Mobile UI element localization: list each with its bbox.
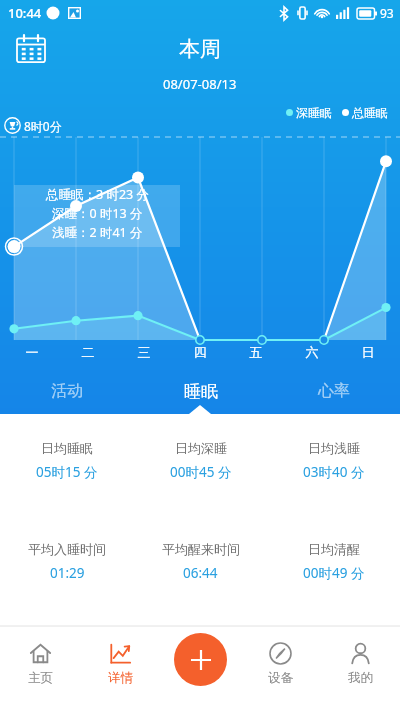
staticText: 设备 [268, 670, 293, 686]
staticText: 五 [228, 344, 284, 360]
staticText: 00时49 分 [303, 564, 365, 582]
staticText: 10:44 [8, 4, 42, 22]
button[interactable]: 日均清醒 [267, 541, 400, 582]
button[interactable]: 平均入睡时间 [0, 541, 134, 582]
staticText: 活动 [51, 381, 83, 401]
staticText: 深睡：0 时13 分 [52, 205, 143, 222]
button[interactable]: 我的 [320, 640, 400, 688]
staticText: 日均清醒 [308, 541, 360, 557]
staticText: 平均入睡时间 [28, 541, 106, 557]
button[interactable]: 日均浅睡 [267, 440, 400, 481]
staticText: 浅睡：2 时41 分 [52, 224, 143, 241]
staticText: 06:44 [183, 564, 218, 582]
button[interactable]: 日均睡眠 [0, 440, 134, 481]
staticText: 日均深睡 [175, 440, 227, 456]
staticText: 日均睡眠 [41, 440, 93, 456]
button[interactable]: 详情 [80, 640, 160, 688]
staticText: 日均浅睡 [308, 440, 360, 456]
staticText: 二 [60, 344, 116, 360]
button[interactable]: 活动 [0, 368, 134, 414]
staticText: 总睡眠 [352, 105, 388, 120]
staticText: 心率 [318, 381, 350, 401]
staticText: 三 [116, 344, 172, 360]
button[interactable]: 日均深睡 [134, 440, 267, 481]
staticText: 平均醒来时间 [162, 541, 240, 557]
button[interactable]: 主页 [0, 640, 80, 688]
staticText: 93 [380, 5, 394, 21]
button[interactable]: 心率 [267, 368, 400, 414]
staticText: 8时0分 [24, 118, 62, 134]
button[interactable]: 睡眠 [134, 368, 267, 414]
staticText: 详情 [108, 670, 133, 686]
staticText: 08/07-08/13 [163, 75, 237, 93]
staticText: 本周 [179, 36, 221, 62]
button[interactable]: Calendar [14, 32, 48, 66]
button[interactable]: 平均醒来时间 [134, 541, 267, 582]
button[interactable]: 设备 [240, 640, 320, 688]
staticText: 03时40 分 [303, 463, 365, 481]
staticText: 00时45 分 [170, 463, 232, 481]
button[interactable]: Add [174, 633, 227, 686]
staticText: 01:29 [50, 564, 85, 582]
staticText: 主页 [28, 670, 53, 686]
staticText: 日 [340, 344, 396, 360]
staticText: 六 [284, 344, 340, 360]
staticText: 深睡眠 [296, 105, 332, 120]
staticText: 四 [172, 344, 228, 360]
staticText: 睡眠 [184, 381, 218, 402]
staticText: 我的 [348, 670, 373, 686]
staticText: 一 [4, 344, 60, 360]
staticText: 05时15 分 [36, 463, 98, 481]
staticText: 总睡眠：3 时23 分 [46, 186, 149, 203]
